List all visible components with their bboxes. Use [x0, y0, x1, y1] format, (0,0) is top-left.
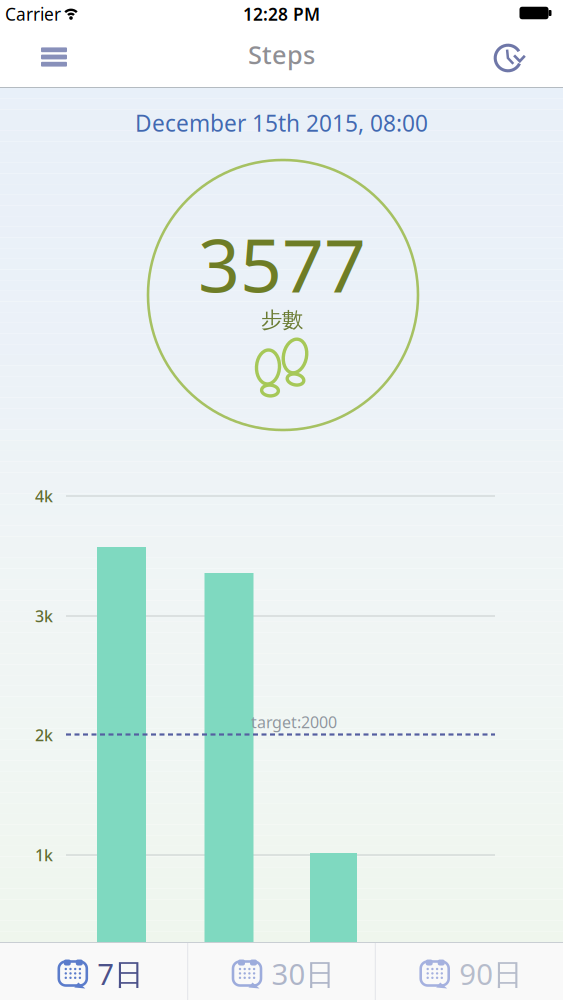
staticText: 30日: [271, 954, 334, 993]
staticText: Steps: [248, 38, 315, 71]
staticText: 2k: [35, 724, 53, 746]
staticText: 1k: [35, 844, 53, 866]
staticText: 90日: [459, 954, 522, 993]
button[interactable]: 90日: [376, 943, 562, 1000]
staticText: 7日: [97, 954, 143, 993]
staticText: 步數: [261, 307, 303, 333]
staticText: 12:28 PM: [243, 2, 320, 25]
staticText: target:2000: [251, 711, 337, 733]
button[interactable]: Menu: [26, 32, 82, 82]
button[interactable]: 30日: [188, 943, 374, 1000]
button[interactable]: 7日: [1, 943, 187, 1000]
staticText: Carrier: [5, 2, 61, 25]
button[interactable]: History: [480, 33, 536, 83]
staticText: 3k: [35, 605, 53, 627]
staticText: 3577: [198, 215, 366, 313]
staticText: 4k: [35, 485, 53, 507]
staticText: December 15th 2015, 08:00: [135, 108, 428, 138]
